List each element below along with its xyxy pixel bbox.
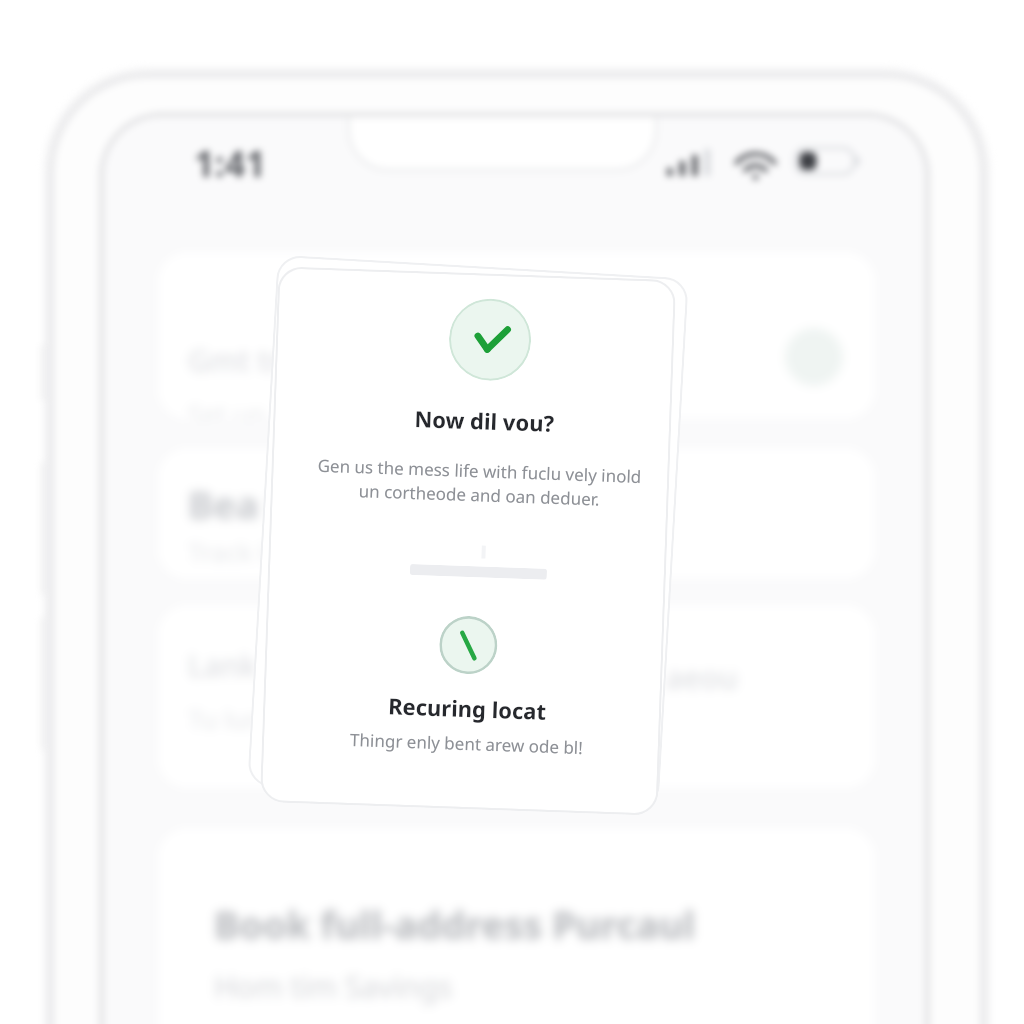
staticText: Track lo	[188, 534, 282, 569]
staticText: Tu lun	[188, 701, 263, 736]
button[interactable]: Book full-address Purcaul	[158, 828, 875, 1024]
staticText: Lank	[188, 645, 257, 686]
staticText: aeou	[666, 657, 738, 698]
staticText: Recuring locat	[388, 690, 547, 726]
staticText: Bea fa	[188, 478, 307, 530]
staticText: 1:41	[194, 139, 266, 188]
staticText: Book full-address Purcaul	[214, 898, 696, 950]
button[interactable]: Success	[448, 297, 532, 382]
button[interactable]: Recurring	[438, 615, 498, 675]
button[interactable]: Success	[262, 268, 674, 814]
staticText: Hom tim Savings	[214, 966, 453, 1007]
staticText: un cortheode and oan deduer.	[358, 479, 600, 511]
staticText: Gen us the mess life with fuclu vely ino…	[317, 454, 642, 488]
button[interactable]: Gmt tre	[158, 252, 875, 419]
button[interactable]: Bea fa	[158, 448, 875, 579]
staticText: Gmt tre	[188, 340, 299, 381]
staticText: Now dil vou?	[414, 403, 555, 438]
staticText: Thingr enly bent arew ode bl!	[350, 728, 583, 759]
button[interactable]: Lank	[158, 605, 875, 788]
